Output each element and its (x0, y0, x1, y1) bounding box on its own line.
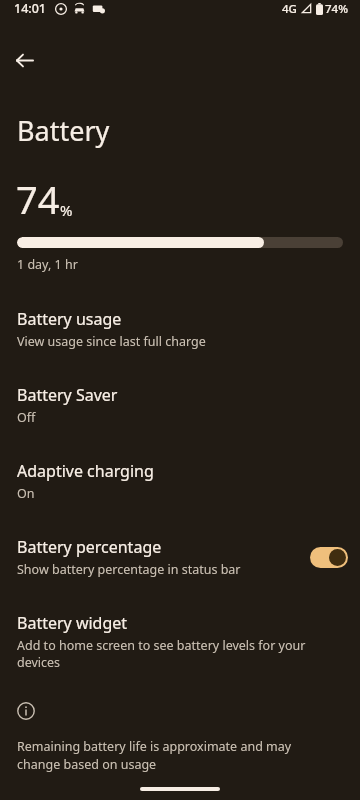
staticText: 1 day, 1 hr (17, 256, 78, 273)
staticText: Battery percentage (17, 536, 162, 558)
staticText: View usage since last full charge (17, 333, 206, 350)
staticText: Battery usage (17, 308, 122, 330)
staticText: Adaptive charging (17, 460, 154, 482)
staticText: Off (17, 409, 36, 426)
button[interactable]: Adaptive charging (0, 451, 360, 511)
staticText: 14:01 (14, 0, 47, 17)
staticText: 74% (325, 1, 348, 17)
staticText: On (17, 485, 35, 502)
staticText: Remaining battery life is approximate an… (17, 738, 336, 773)
staticText: Battery (17, 112, 110, 149)
button[interactable]: Back (8, 44, 40, 76)
staticText: % (60, 200, 73, 220)
button[interactable]: Battery usage (0, 299, 360, 359)
staticText: 74 (16, 173, 60, 225)
button[interactable]: Battery percentage toggle (310, 547, 348, 568)
button[interactable]: Battery Saver (0, 375, 360, 435)
staticText: Battery Saver (17, 384, 118, 406)
staticText: Show battery percentage in status bar (17, 561, 241, 578)
button[interactable]: Battery percentage (0, 527, 360, 587)
button[interactable]: Battery widget (0, 603, 360, 680)
staticText: 4G (282, 1, 297, 17)
staticText: Add to home screen to see battery levels… (17, 637, 348, 671)
staticText: Battery widget (17, 612, 128, 634)
